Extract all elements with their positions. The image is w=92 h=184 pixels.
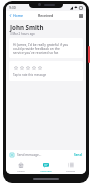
button[interactable]: Catalog: [62, 161, 79, 173]
button[interactable]: Rate 1 stars: [13, 65, 19, 71]
staticText: Tap to rate this message: [13, 73, 47, 77]
staticText: Received: [38, 13, 54, 18]
staticText: Hi James, I'd be really grateful if you: [13, 42, 69, 46]
staticText: 9:30: [9, 5, 16, 10]
staticText: 3 Mar 2 hours ago: [10, 32, 35, 36]
staticText: Send message...: [17, 153, 42, 157]
button[interactable]: Rate 5 stars: [37, 65, 43, 71]
button[interactable]: Rate 3 stars: [25, 65, 31, 71]
staticText: service you've received so far.: [13, 50, 59, 54]
button[interactable]: Messages: [36, 161, 56, 173]
button[interactable]: Rate 2 stars: [19, 65, 25, 71]
button[interactable]: Send message...: [17, 153, 71, 157]
staticText: Home: [17, 169, 25, 172]
button[interactable]: Attach: [9, 152, 15, 158]
staticText: Messages: [40, 169, 52, 172]
button[interactable]: Menu: [76, 12, 86, 20]
button[interactable]: Home: [13, 161, 29, 173]
button[interactable]: Rate 4 stars: [31, 65, 37, 71]
staticText: John Smith: [10, 23, 44, 31]
button[interactable]: Home: [6, 12, 26, 19]
button[interactable]: Send: [73, 152, 83, 158]
staticText: could provide feedback on the: [13, 46, 60, 50]
staticText: Home: [13, 13, 23, 18]
button[interactable]: Hi James, I'd be really grateful if you: [9, 38, 83, 58]
staticText: Send: [74, 153, 82, 157]
staticText: Catalog: [66, 169, 75, 172]
